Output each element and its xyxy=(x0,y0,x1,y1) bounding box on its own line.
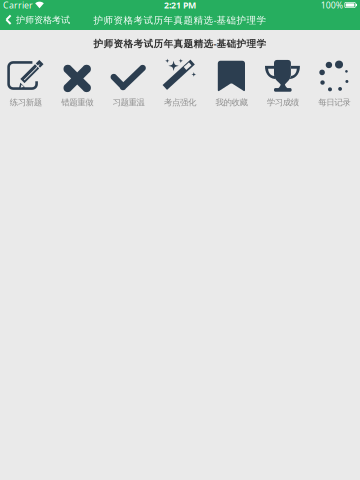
staticText: 考点强化 xyxy=(164,97,196,108)
button[interactable]: 我的收藏 xyxy=(206,55,257,111)
staticText: 护师资格考试 xyxy=(16,14,70,26)
staticText: 护师资格考试历年真题精选-基础护理学 xyxy=(93,37,266,50)
staticText: 习题重温 xyxy=(113,97,145,108)
staticText: 错题重做 xyxy=(61,97,93,108)
button[interactable]: 练习新题 xyxy=(0,55,51,111)
button[interactable]: 学习成绩 xyxy=(257,55,308,111)
staticText: 每日记录 xyxy=(318,97,350,108)
button[interactable]: 护师资格考试 xyxy=(0,10,76,30)
staticText: 护师资格考试历年真题精选-基础护理学 xyxy=(93,13,266,26)
staticText: 练习新题 xyxy=(10,97,42,108)
staticText: 100% xyxy=(321,0,343,11)
button[interactable]: 考点强化 xyxy=(154,55,206,111)
staticText: 学习成绩 xyxy=(267,97,299,108)
staticText: Carrier xyxy=(3,0,33,11)
button[interactable]: 每日记录 xyxy=(308,55,360,111)
button[interactable]: 错题重做 xyxy=(51,55,103,111)
staticText: 我的收藏 xyxy=(215,97,247,108)
button[interactable]: 习题重温 xyxy=(103,55,154,111)
staticText: 2:21 PM xyxy=(164,0,196,11)
